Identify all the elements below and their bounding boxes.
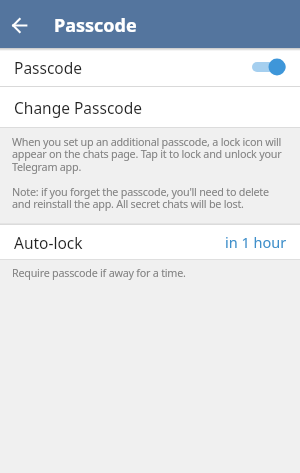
button[interactable]: Change Passcode — [0, 87, 300, 127]
staticText: Note: if you forget the passcode, you'll… — [12, 184, 269, 211]
button[interactable] — [0, 0, 38, 48]
staticText: Passcode — [54, 13, 137, 38]
button[interactable]: Passcode — [0, 48, 300, 86]
staticText: Auto-lock — [14, 232, 83, 253]
button[interactable]: Auto-lock — [0, 225, 300, 259]
staticText: in 1 hour — [225, 232, 287, 252]
staticText: Require passcode if away for a time. — [12, 265, 186, 280]
staticText: When you set up an additional passcode, … — [12, 134, 282, 174]
staticText: Change Passcode — [14, 97, 142, 118]
staticText: Passcode — [14, 57, 83, 78]
